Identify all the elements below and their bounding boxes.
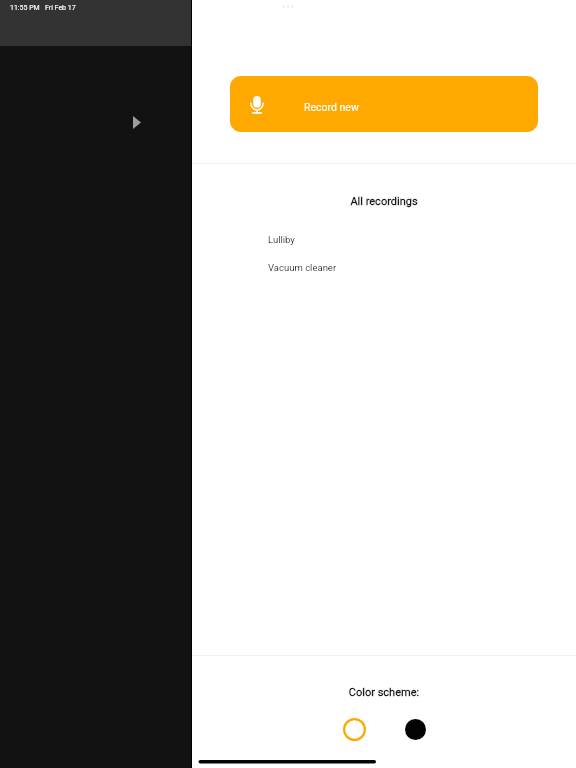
staticText: 11:55 PM [10,4,40,12]
staticText: Fri Feb 17 [45,4,76,12]
staticText: Color scheme: [192,686,576,699]
staticText: Vacuum cleaner [268,262,337,273]
staticText: Lulliby [268,234,295,245]
button[interactable]: Light colour scheme [339,714,369,744]
staticText: All recordings [192,195,576,208]
button[interactable]: Lulliby [192,225,576,253]
button[interactable]: Record new [230,76,538,132]
button[interactable]: Vacuum cleaner [192,253,576,281]
button[interactable]: Dark colour scheme [400,714,430,744]
button[interactable]: Play [133,116,141,129]
staticText: Record new [304,101,359,113]
